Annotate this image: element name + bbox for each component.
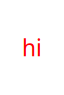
staticText: hi: [22, 32, 42, 62]
